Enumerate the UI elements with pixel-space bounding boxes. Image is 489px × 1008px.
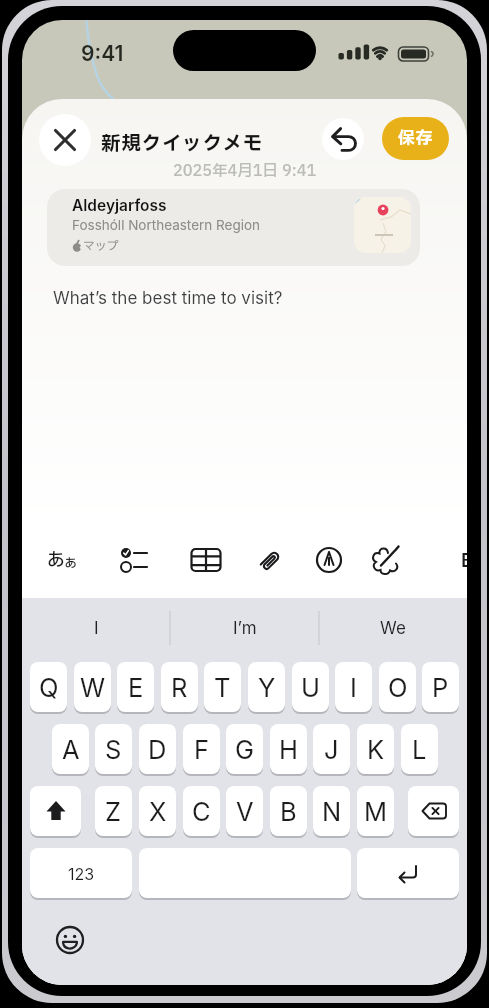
button[interactable]: I [335,662,372,712]
staticText: 保存 [398,126,433,151]
staticText: S [105,734,122,765]
staticText: W [80,672,106,703]
button[interactable] [322,118,364,160]
staticText: I [350,672,357,703]
staticText: L [412,734,427,765]
button[interactable] [113,538,157,582]
button[interactable] [55,925,85,955]
button[interactable]: D [139,724,176,774]
button[interactable]: V [226,786,263,836]
button[interactable]: B [270,786,307,836]
button[interactable]: K [357,724,394,774]
button[interactable] [139,848,351,898]
staticText: I’m [233,618,257,639]
button[interactable]: Z [95,786,132,836]
button[interactable]: E [117,662,154,712]
button[interactable]: S [95,724,132,774]
staticText: R [171,672,188,703]
button[interactable]: A [52,724,89,774]
staticText: ぁ [63,551,79,573]
staticText: A [62,734,80,765]
staticText: C [192,796,211,827]
button[interactable]: N [313,786,350,836]
staticText: Y [258,672,276,703]
button[interactable]: C [183,786,220,836]
button[interactable] [364,538,408,582]
button[interactable]: F [183,724,220,774]
button[interactable]: W [74,662,111,712]
staticText: E [128,672,144,703]
staticText: マップ [83,237,119,255]
staticText: Z [105,796,122,827]
staticText: M [364,796,388,827]
button[interactable]: Q [30,662,67,712]
button[interactable] [357,848,459,898]
staticText: We [380,618,406,639]
button[interactable]: H [270,724,307,774]
staticText: あ [47,547,65,574]
button[interactable]: P [422,662,459,712]
button[interactable]: X [139,786,176,836]
staticText: F [194,734,210,765]
staticText: Fosshóll Northeastern Region [72,217,261,233]
button[interactable] [184,538,228,582]
button[interactable] [408,786,459,836]
staticText: 123 [68,864,95,883]
button[interactable]: 123 [30,848,132,898]
button[interactable]: We [319,604,467,652]
button[interactable]: L [401,724,438,774]
button[interactable] [307,538,351,582]
staticText: U [301,672,320,703]
staticText: P [432,672,449,703]
button[interactable] [249,538,293,582]
button[interactable]: Y [248,662,285,712]
button[interactable]: U [292,662,329,712]
staticText: N [322,796,342,827]
staticText: H [279,734,298,765]
staticText: K [367,734,385,765]
button[interactable]: I’m [170,604,319,652]
button[interactable]: O [379,662,416,712]
button[interactable]: 保存 [382,117,449,160]
button[interactable] [39,114,91,166]
button[interactable] [30,786,81,836]
staticText: G [235,734,255,765]
button[interactable]: J [313,724,350,774]
staticText: 新規クイックメモ [101,129,264,158]
button[interactable]: R [161,662,198,712]
button[interactable]: I [22,604,170,652]
staticText: B [280,796,297,827]
button[interactable]: Aldeyjarfoss [47,189,420,266]
staticText: D [148,734,167,765]
staticText: V [236,796,254,827]
button[interactable]: T [204,662,241,712]
staticText: Q [39,672,59,703]
button[interactable]: あ [34,527,78,594]
staticText: X [149,796,167,827]
staticText: J [324,734,339,765]
staticText: What’s the best time to visit? [53,288,283,309]
button[interactable]: M [357,786,394,836]
button[interactable]: G [226,724,263,774]
staticText: Aldeyjarfoss [72,196,167,215]
staticText: O [388,672,408,703]
staticText: T [214,672,231,703]
staticText: I [94,618,99,639]
staticText: 2025年4月1日 9:41 [173,160,317,180]
staticText: 9:41 [81,41,124,66]
staticText: B [461,549,467,572]
